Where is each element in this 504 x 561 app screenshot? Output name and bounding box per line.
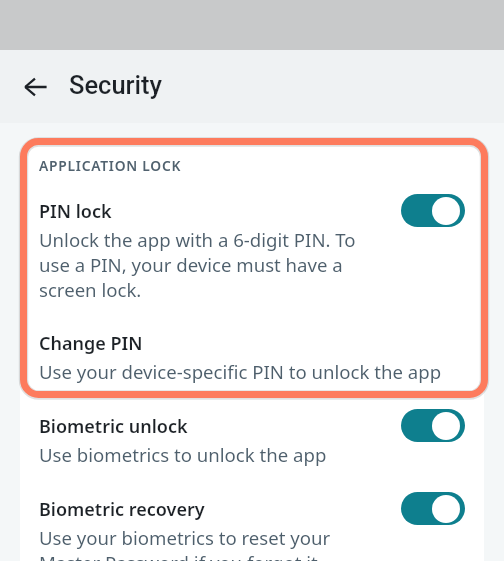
button[interactable]: Change PIN	[39, 331, 465, 384]
button[interactable]: Toggle	[401, 492, 465, 525]
button[interactable]: Biometric unlock	[39, 414, 465, 467]
staticText: Biometric recovery	[39, 497, 205, 522]
staticText: Biometric unlock	[39, 414, 188, 439]
staticText: APPLICATION LOCK	[39, 156, 182, 175]
staticText: Use your biometrics to reset your Master…	[39, 525, 377, 561]
button[interactable]: Toggle	[401, 194, 465, 227]
button[interactable]: Back	[11, 63, 59, 111]
button[interactable]: PIN lock	[39, 199, 465, 302]
button[interactable]: Biometric recovery	[39, 497, 465, 561]
staticText: Use biometrics to unlock the app	[39, 442, 327, 467]
staticText: Change PIN	[39, 331, 143, 356]
staticText: Unlock the app with a 6-digit PIN. To us…	[39, 227, 377, 302]
staticText: Use your device-specific PIN to unlock t…	[39, 359, 442, 384]
button[interactable]: Toggle	[401, 409, 465, 442]
staticText: PIN lock	[39, 199, 112, 224]
staticText: Security	[69, 70, 163, 100]
